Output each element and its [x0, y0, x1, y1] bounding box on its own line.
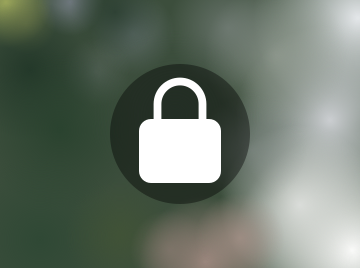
- button[interactable]: Locked: [0, 0, 360, 268]
